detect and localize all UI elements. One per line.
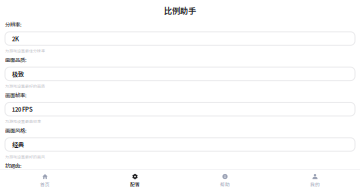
staticText: 2K [12, 34, 19, 43]
button[interactable]: 极致 [5, 67, 355, 81]
button[interactable]: 2K [5, 32, 355, 45]
staticText: 画面帧率: [5, 91, 27, 99]
staticText: 画面风格: [5, 126, 27, 134]
staticText: 120 FPS [12, 105, 33, 113]
staticText: 分辨率: [5, 21, 22, 28]
button[interactable]: 帮助 [180, 170, 270, 192]
staticText: 为游戏设置最佳分辨率 [5, 48, 45, 54]
staticText: 经典 [12, 140, 24, 149]
staticText: 抗锯齿: [5, 162, 22, 169]
staticText: 帮助 [220, 181, 230, 188]
staticText: 首页 [40, 181, 50, 188]
staticText: 为游戏设置最高帧率 [5, 118, 41, 124]
staticText: 我的 [310, 181, 320, 188]
staticText: 极致 [12, 69, 24, 78]
button[interactable]: 首页 [0, 170, 90, 192]
staticText: 比例助手 [164, 4, 196, 16]
button[interactable]: 经典 [5, 138, 355, 151]
button[interactable]: 配置 [90, 170, 180, 192]
staticText: 配置 [130, 181, 140, 188]
button[interactable]: 120 FPS [5, 102, 355, 116]
button[interactable]: 我的 [270, 170, 360, 192]
staticText: 为游戏设置最好的画风 [5, 154, 45, 160]
staticText: 为游戏设置最好的画质 [5, 83, 45, 89]
staticText: 画面品质: [5, 56, 27, 64]
